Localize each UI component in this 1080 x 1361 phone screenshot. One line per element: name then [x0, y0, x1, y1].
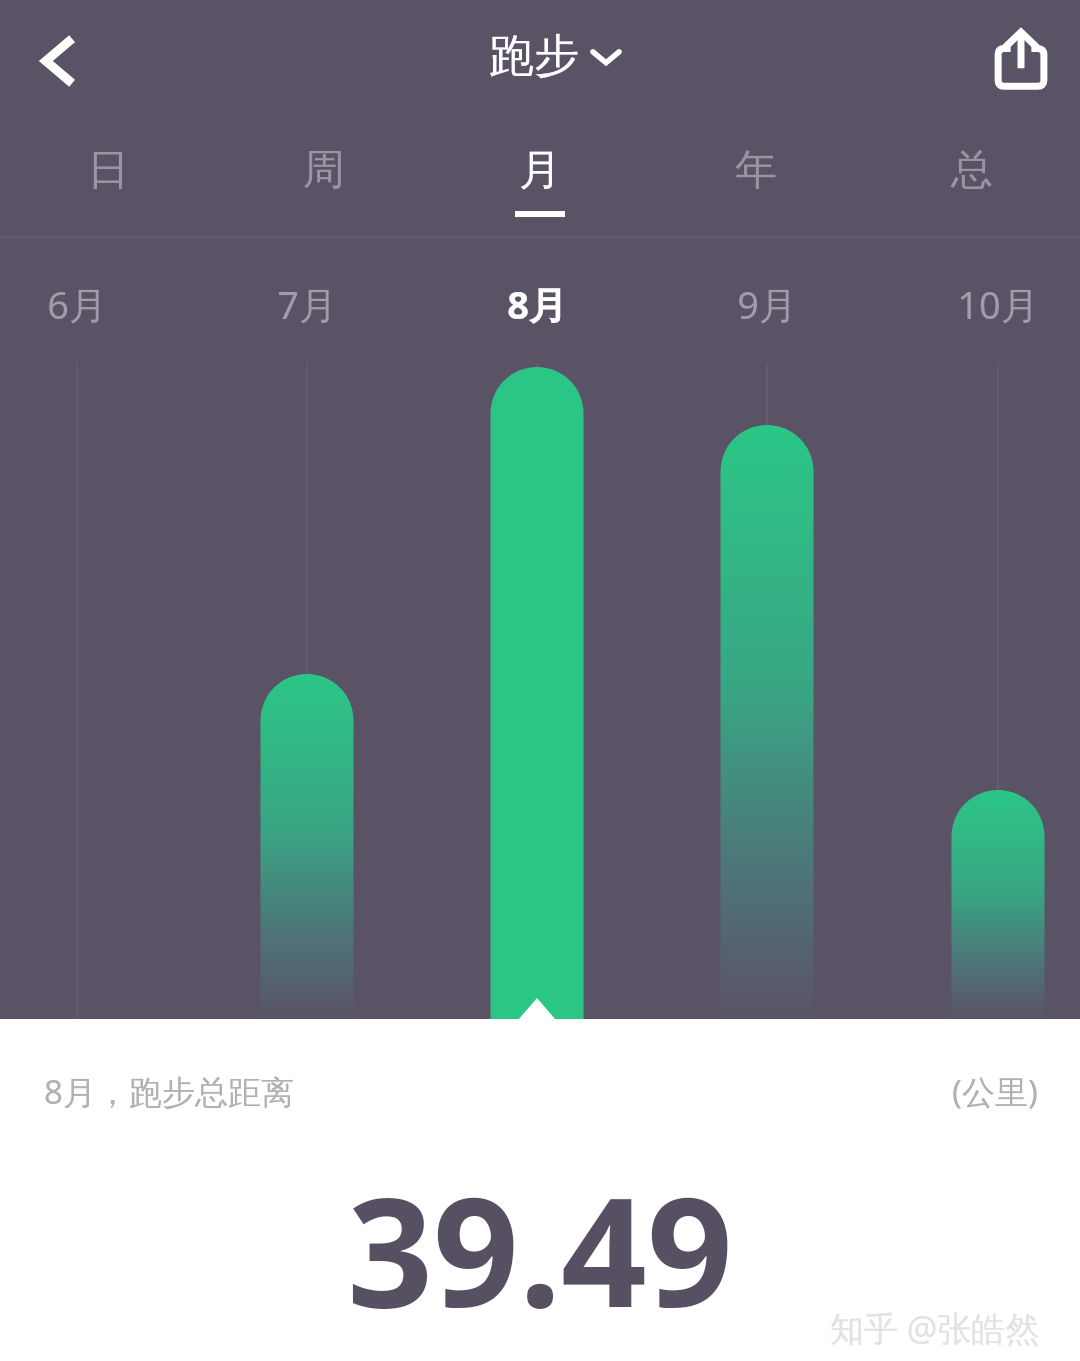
button[interactable]: 年	[648, 122, 864, 238]
staticText: 周	[303, 144, 345, 197]
staticText: 7月	[247, 278, 367, 330]
button[interactable]: 月	[432, 122, 648, 238]
staticText: 年	[735, 144, 777, 197]
button[interactable]: 跑步	[489, 28, 619, 85]
staticText: 39.49	[347, 1147, 733, 1351]
staticText: 8月，跑步总距离	[44, 1069, 294, 1114]
button[interactable]: Back	[6, 8, 112, 114]
staticText: 6月	[17, 278, 137, 330]
staticText: 8月	[477, 278, 597, 330]
staticText: 跑步	[489, 28, 579, 85]
button[interactable]: 周	[216, 122, 432, 238]
staticText: (公里)	[952, 1069, 1038, 1114]
button[interactable]: 日	[0, 122, 216, 238]
staticText: 10月	[938, 278, 1058, 330]
staticText: 总	[951, 144, 993, 197]
staticText: 9月	[707, 278, 827, 330]
button[interactable]: 总	[864, 122, 1080, 238]
button[interactable]: Share	[968, 6, 1074, 112]
staticText: 知乎 @张皓然	[830, 1305, 1040, 1351]
staticText: 日	[87, 144, 129, 197]
staticText: 月	[519, 144, 561, 197]
